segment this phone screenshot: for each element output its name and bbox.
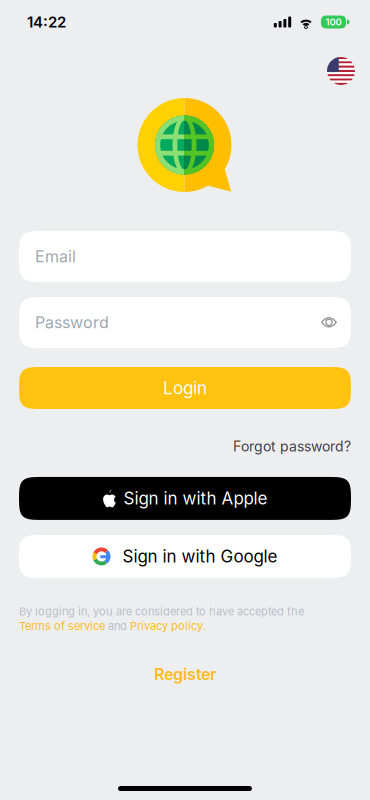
- staticText: Email: [35, 247, 76, 266]
- staticText: Forgot password?: [233, 438, 351, 455]
- staticText: 14:22: [27, 13, 66, 31]
- staticText: Register: [154, 665, 216, 684]
- staticText: Sign in with Google: [122, 546, 277, 567]
- button[interactable]: Privacy policy.: [130, 619, 206, 632]
- button[interactable]: Sign in with Apple: [19, 477, 351, 520]
- staticText: By logging in, you are considered to hav…: [19, 605, 304, 618]
- button[interactable]: Terms of service: [19, 619, 105, 632]
- button[interactable]: Login: [19, 367, 351, 409]
- button[interactable]: Register: [154, 665, 216, 684]
- staticText: 100: [325, 16, 341, 28]
- staticText: Login: [163, 378, 207, 398]
- button[interactable]: Sign in with Google: [19, 535, 351, 578]
- staticText: Terms of service: [19, 619, 105, 632]
- button[interactable]: Forgot password?: [233, 438, 351, 455]
- staticText: and: [105, 619, 130, 632]
- button[interactable]: Show password: [321, 315, 337, 329]
- staticText: Password: [35, 313, 109, 332]
- staticText: Privacy policy.: [130, 619, 206, 632]
- button[interactable]: Language: [327, 57, 355, 85]
- staticText: Sign in with Apple: [123, 488, 267, 509]
